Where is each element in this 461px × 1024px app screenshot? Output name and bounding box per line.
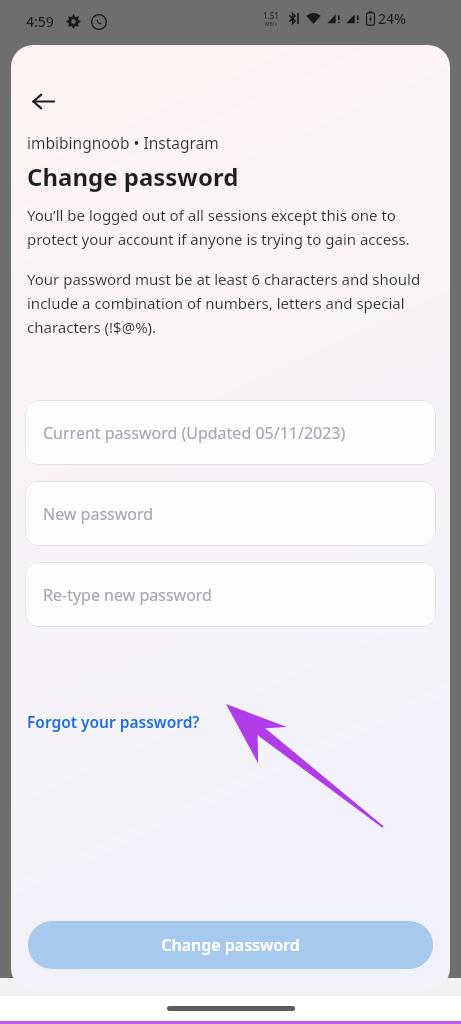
staticText: New password <box>43 503 154 525</box>
staticText: Current password (Updated 05/11/2023) <box>43 422 346 444</box>
button[interactable]: Back <box>19 77 67 125</box>
button[interactable]: Re-type new password <box>25 562 436 627</box>
staticText: Forgot your password? <box>27 711 200 732</box>
staticText: You’ll be logged out of all sessions exc… <box>27 205 442 249</box>
staticText: 4:59 <box>26 12 54 31</box>
button[interactable]: New password <box>25 481 436 546</box>
staticText: imbibingnoob • Instagram <box>27 132 219 153</box>
button[interactable]: Forgot your password? <box>27 711 200 732</box>
staticText: Change password <box>27 160 239 193</box>
button[interactable]: Change password <box>28 921 433 969</box>
staticText: Re-type new password <box>43 584 212 606</box>
staticText: 24% <box>378 9 406 28</box>
staticText: Your password must be at least 6 charact… <box>27 269 442 337</box>
staticText: Change password <box>161 934 300 956</box>
button[interactable]: Current password (Updated 05/11/2023) <box>25 400 436 465</box>
staticText: MB/s <box>265 21 278 28</box>
staticText: 1.51 <box>263 10 279 21</box>
